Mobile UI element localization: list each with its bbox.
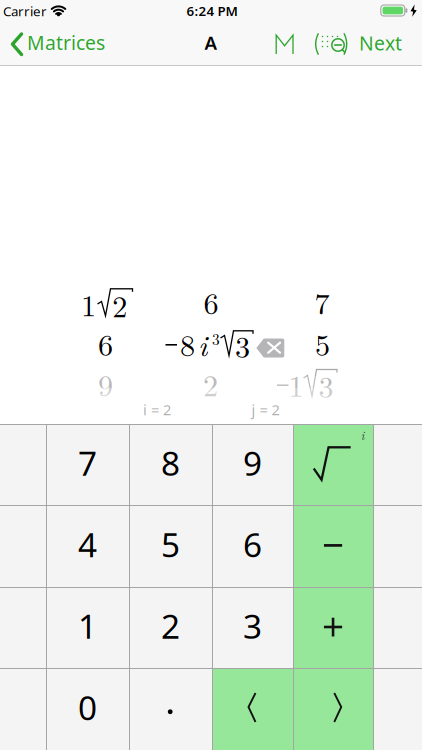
button[interactable] <box>273 29 296 57</box>
staticText: 9 <box>243 441 262 485</box>
button[interactable]: Next <box>349 23 411 63</box>
staticText: 1 <box>288 363 303 405</box>
staticText: 7 <box>314 280 329 323</box>
button[interactable] <box>212 668 293 750</box>
staticText: 3 <box>318 364 333 406</box>
button[interactable] <box>0 587 45 668</box>
staticText: 0 <box>78 685 97 729</box>
button[interactable]: 7 <box>46 424 128 505</box>
staticText: 3 <box>243 604 262 648</box>
staticText: 1 <box>81 282 96 325</box>
button[interactable]: 5 <box>129 506 211 587</box>
button[interactable]: 9 <box>211 424 293 505</box>
staticText: Next <box>359 30 402 56</box>
button[interactable]: 8 <box>129 424 211 505</box>
button[interactable]: 4 <box>46 506 128 587</box>
button[interactable]: 0 <box>46 669 128 750</box>
staticText: 6 <box>98 322 113 364</box>
staticText: 5 <box>315 322 330 364</box>
button[interactable] <box>374 424 422 505</box>
staticText: 3 <box>235 324 250 366</box>
staticText: 2 <box>161 604 180 648</box>
button[interactable] <box>129 669 211 750</box>
staticText: 7 <box>78 441 97 485</box>
staticText: 4 <box>78 522 97 566</box>
staticText: 6:24 PM <box>186 2 237 20</box>
button[interactable] <box>374 587 422 668</box>
staticText: 6 <box>243 522 262 566</box>
staticText: 5 <box>161 522 180 566</box>
staticText: j = 2 <box>251 400 279 419</box>
staticText: 9 <box>98 362 113 405</box>
button[interactable]: 6 <box>211 506 293 587</box>
staticText: 8 <box>180 322 195 365</box>
staticText: A <box>204 30 217 55</box>
staticText: 3 <box>212 328 220 349</box>
button[interactable] <box>293 668 374 750</box>
button[interactable]: Matrices <box>5 24 110 64</box>
staticText: i <box>198 322 207 365</box>
button[interactable]: 3 <box>211 587 293 668</box>
staticText: 2 <box>203 362 218 405</box>
button[interactable]: i <box>293 424 374 505</box>
staticText: Matrices <box>27 29 105 56</box>
staticText: i = 2 <box>143 400 171 419</box>
button[interactable]: 2 <box>129 587 211 668</box>
staticText: 8 <box>161 441 180 485</box>
staticText: 2 <box>112 283 127 326</box>
button[interactable]: 1 <box>46 587 128 668</box>
button[interactable] <box>313 28 349 60</box>
button[interactable] <box>0 424 45 505</box>
staticText: Carrier <box>3 2 47 20</box>
button[interactable] <box>293 505 374 587</box>
button[interactable] <box>256 337 285 358</box>
button[interactable] <box>293 587 374 668</box>
staticText: i <box>361 426 365 443</box>
staticText: 6 <box>203 280 218 323</box>
staticText: 1 <box>78 604 97 648</box>
